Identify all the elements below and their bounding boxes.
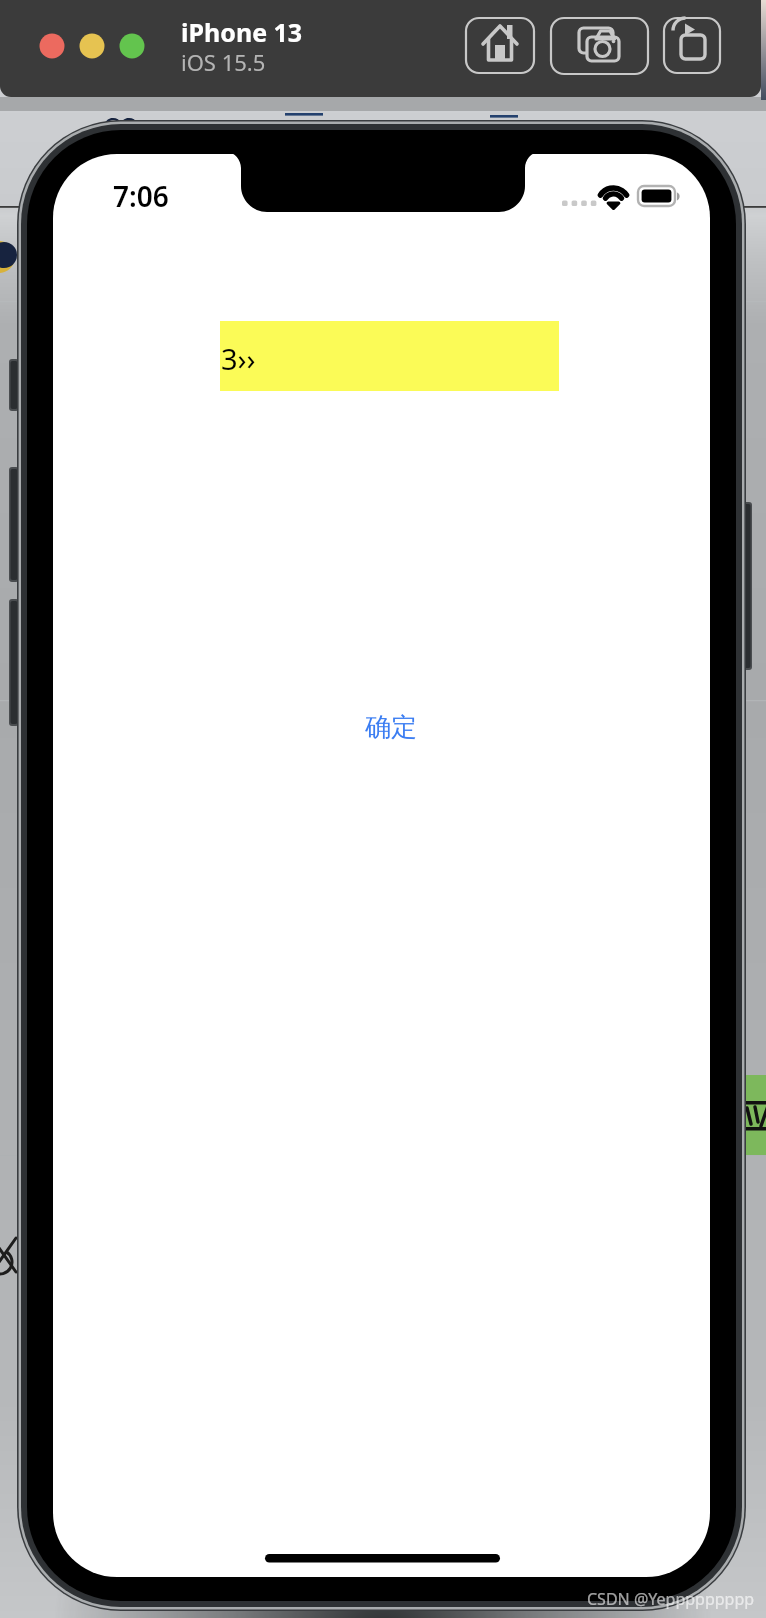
- button[interactable]: Rotate: [664, 18, 722, 76]
- staticText: 确定: [365, 711, 417, 744]
- staticText: 7:06: [113, 177, 169, 215]
- button[interactable]: 确定: [345, 703, 435, 751]
- staticText: CSDN @Yeppppppppp: [587, 1588, 755, 1610]
- staticText: iPhone 13: [181, 15, 303, 49]
- button[interactable]: Screenshot: [551, 18, 647, 76]
- button[interactable]: Home: [467, 18, 533, 76]
- staticText: 3››: [221, 339, 256, 378]
- button[interactable]: Text input: [220, 321, 559, 391]
- staticText: iOS 15.5: [181, 47, 266, 77]
